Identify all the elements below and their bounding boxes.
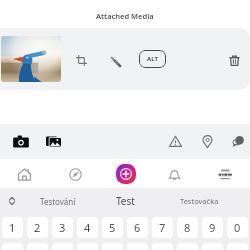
button[interactable]: New post xyxy=(116,164,136,184)
button[interactable]: Notifications xyxy=(163,163,186,186)
staticText: 5 xyxy=(109,220,116,235)
button[interactable]: 6 xyxy=(127,217,148,238)
button[interactable]: Location xyxy=(196,130,219,153)
staticText: 0 xyxy=(234,220,241,235)
button[interactable]: Testování xyxy=(22,188,94,214)
button[interactable]: 4 xyxy=(77,217,98,238)
button[interactable]: 9 xyxy=(202,217,223,238)
button[interactable]: Explore xyxy=(64,163,87,186)
staticText: 9 xyxy=(209,220,216,235)
button[interactable]: 8 xyxy=(177,217,198,238)
button[interactable]: Home xyxy=(13,163,36,186)
button[interactable]: 7 xyxy=(152,217,173,238)
button[interactable]: Delete xyxy=(223,49,245,71)
staticText: 3 xyxy=(59,220,66,235)
button[interactable]: Reply settings xyxy=(227,130,250,153)
button[interactable]: Expand suggestions xyxy=(4,193,20,209)
staticText: 6 xyxy=(134,220,141,235)
staticText: 7 xyxy=(159,220,166,235)
button[interactable]: Crop xyxy=(70,49,92,71)
button[interactable]: 3 xyxy=(52,217,73,238)
staticText: ALT xyxy=(147,55,158,63)
button[interactable]: Content warning xyxy=(164,130,187,153)
button[interactable]: Test xyxy=(104,188,146,214)
button[interactable]: 1 xyxy=(2,217,23,238)
button[interactable]: Testovačka xyxy=(168,188,230,214)
staticText: 4 xyxy=(84,220,91,235)
button[interactable]: 5 xyxy=(102,217,123,238)
staticText: 1 xyxy=(9,220,16,235)
button[interactable]: Photos xyxy=(42,130,65,153)
button[interactable]: ALT xyxy=(139,50,166,68)
staticText: 2 xyxy=(34,220,41,235)
button[interactable]: Edit xyxy=(104,50,126,72)
staticText: Testovačka xyxy=(180,196,219,206)
button[interactable]: Camera xyxy=(9,130,32,153)
button[interactable]: 2 xyxy=(27,217,48,238)
staticText: 8 xyxy=(184,220,191,235)
staticText: Attached Media xyxy=(96,11,154,21)
staticText: Test xyxy=(116,194,135,208)
button[interactable]: Profile xyxy=(218,167,233,182)
staticText: Testování xyxy=(40,196,76,207)
button[interactable]: 0 xyxy=(227,217,248,238)
